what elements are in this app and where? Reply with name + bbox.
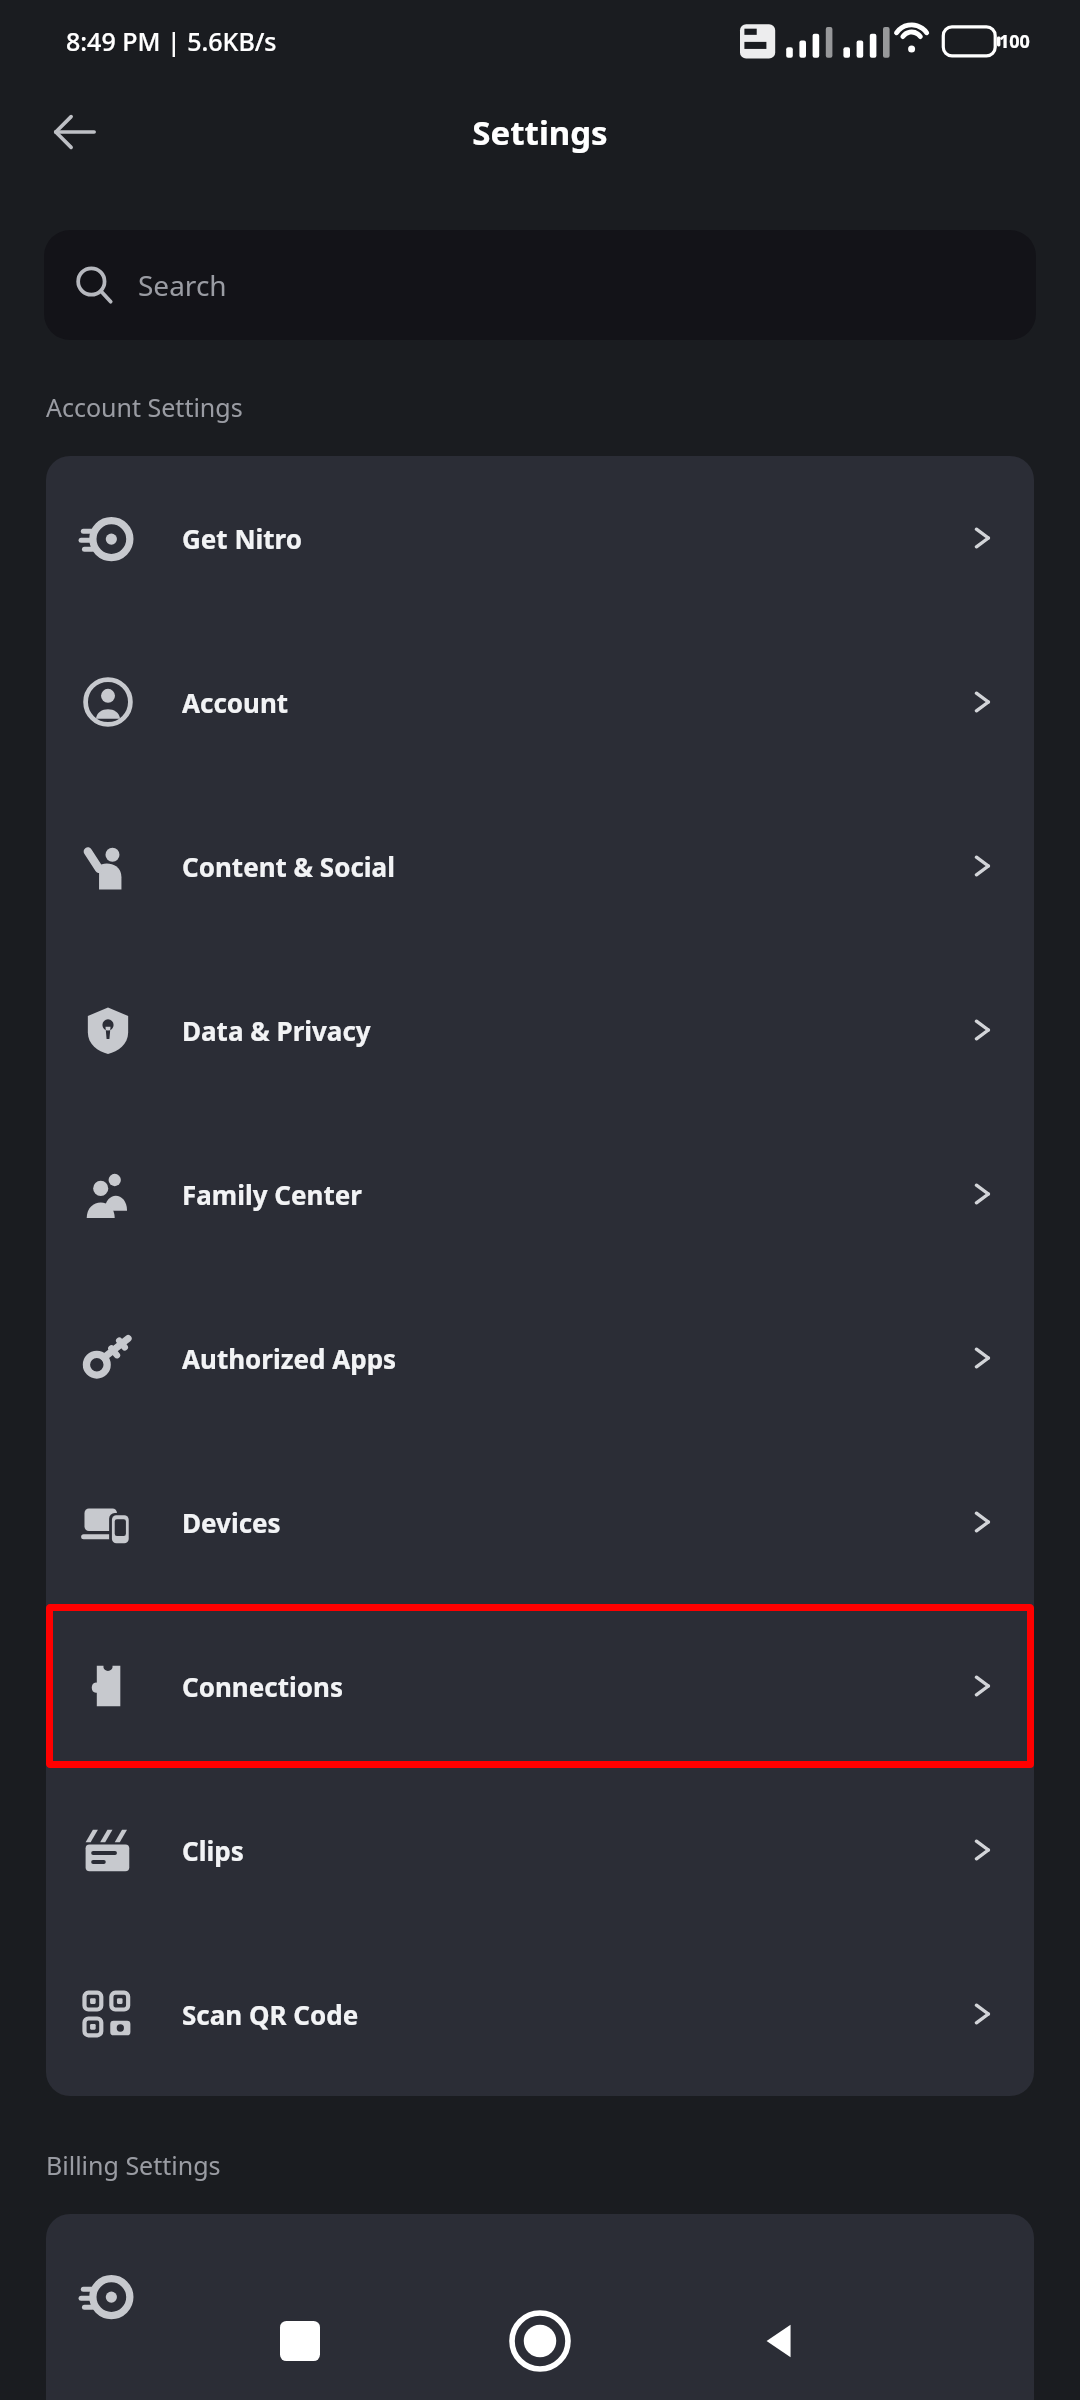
staticText: Account	[182, 685, 962, 720]
staticText: Search	[138, 266, 227, 304]
staticText: Billing Settings	[46, 2148, 221, 2182]
button[interactable]: Authorized Apps	[46, 1276, 1034, 1440]
button[interactable]: Connections	[46, 1604, 1034, 1768]
staticText: Account Settings	[46, 390, 243, 424]
staticText: Clips	[182, 1833, 962, 1868]
staticText: Scan QR Code	[182, 1997, 962, 2032]
button[interactable]: Home	[497, 2298, 583, 2384]
button[interactable]: Back	[36, 94, 112, 170]
staticText: Settings	[472, 110, 608, 155]
button[interactable]: Family Center	[46, 1112, 1034, 1276]
button[interactable]	[46, 2214, 1034, 2378]
button[interactable]: Account	[46, 620, 1034, 784]
button[interactable]: Back	[742, 2303, 818, 2379]
button[interactable]: Content & Social	[46, 784, 1034, 948]
staticText: Authorized Apps	[182, 1341, 962, 1376]
staticText: Data & Privacy	[182, 1013, 962, 1048]
button[interactable]: Search	[44, 230, 1036, 340]
staticText: Connections	[182, 1669, 962, 1704]
button[interactable]: Clips	[46, 1768, 1034, 1932]
staticText: 8:49 PM | 5.6KB/s	[66, 24, 277, 58]
staticText: 100	[999, 29, 1030, 54]
button[interactable]: Scan QR Code	[46, 1932, 1034, 2096]
button[interactable]: Recents	[262, 2303, 338, 2379]
staticText: Family Center	[182, 1177, 962, 1212]
staticText: Content & Social	[182, 849, 962, 884]
staticText: Devices	[182, 1505, 962, 1540]
button[interactable]: Data & Privacy	[46, 948, 1034, 1112]
button[interactable]: Devices	[46, 1440, 1034, 1604]
staticText: Get Nitro	[182, 521, 962, 556]
button[interactable]: Get Nitro	[46, 456, 1034, 620]
